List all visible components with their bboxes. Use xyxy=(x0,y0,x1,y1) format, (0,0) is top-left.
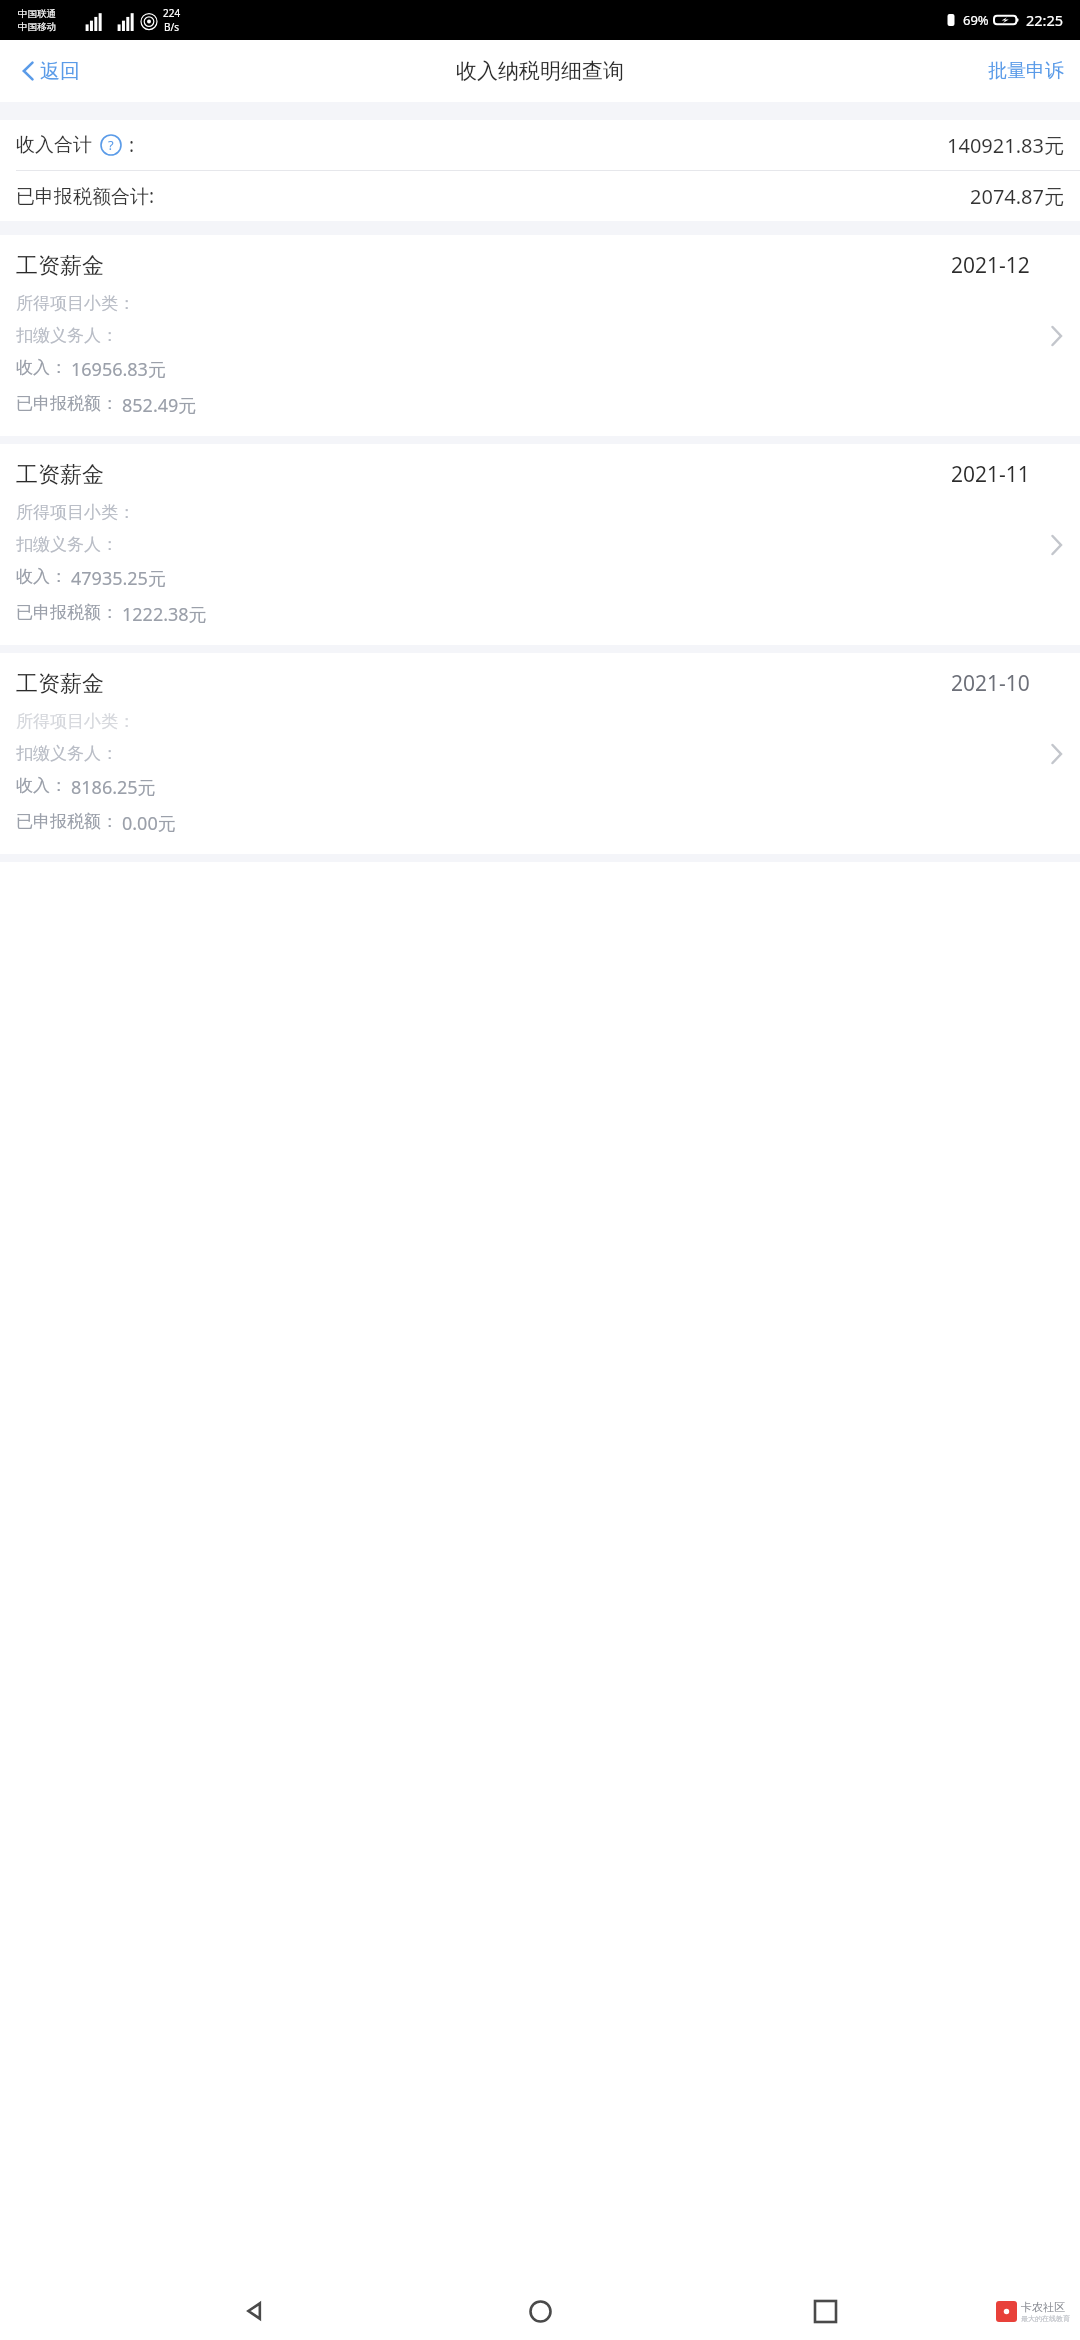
staticText: 16956.83元 xyxy=(71,357,166,382)
staticText: 批量申诉 xyxy=(988,59,1064,83)
staticText: 收入： xyxy=(16,775,67,796)
staticText: 224 xyxy=(163,6,181,20)
staticText: 返回 xyxy=(40,59,80,84)
staticText: 所得项目小类： xyxy=(16,711,135,732)
staticText: 所得项目小类： xyxy=(16,293,135,314)
button[interactable]: 返回 xyxy=(225,2282,285,2340)
button[interactable]: 批量申诉 xyxy=(972,49,1080,93)
button[interactable]: 工资薪金 xyxy=(0,235,1080,436)
staticText: 0.00元 xyxy=(122,811,176,836)
button[interactable]: 主屏幕 xyxy=(510,2282,570,2340)
staticText: 2074.87元 xyxy=(970,183,1064,210)
staticText: 工资薪金 xyxy=(16,670,104,698)
button[interactable]: 工资薪金 xyxy=(0,653,1080,854)
staticText: 扣缴义务人： xyxy=(16,325,118,346)
staticText: 2021-10 xyxy=(951,669,1030,698)
staticText: 扣缴义务人： xyxy=(16,743,118,764)
staticText: 已申报税额： xyxy=(16,602,118,623)
staticText: 2021-11 xyxy=(951,460,1030,489)
staticText: 22:25 xyxy=(1026,10,1064,30)
button[interactable]: 帮助 xyxy=(100,134,122,156)
staticText: 卡农社区 xyxy=(1021,2300,1065,2314)
staticText: 47935.25元 xyxy=(71,566,166,591)
button[interactable]: 最近任务 xyxy=(795,2282,855,2340)
staticText: 已申报税额合计: xyxy=(16,183,155,209)
staticText: : xyxy=(129,132,135,158)
staticText: 已申报税额： xyxy=(16,811,118,832)
staticText: 2021-12 xyxy=(951,251,1030,280)
staticText: 已申报税额： xyxy=(16,393,118,414)
staticText: B/s xyxy=(164,20,180,34)
staticText: 所得项目小类： xyxy=(16,502,135,523)
button[interactable]: 工资薪金 xyxy=(0,444,1080,645)
staticText: 收入合计 xyxy=(16,133,92,157)
staticText: 1222.38元 xyxy=(122,602,207,627)
staticText: 扣缴义务人： xyxy=(16,534,118,555)
staticText: 中国联通 xyxy=(18,8,56,20)
staticText: 最大的在线教育 xyxy=(1021,2314,1070,2323)
staticText: 140921.83元 xyxy=(947,132,1064,159)
staticText: 69% xyxy=(963,11,989,29)
staticText: 收入： xyxy=(16,566,67,587)
staticText: 852.49元 xyxy=(122,393,197,418)
staticText: 8186.25元 xyxy=(71,775,156,800)
staticText: 收入： xyxy=(16,357,67,378)
button[interactable]: 返回 xyxy=(0,50,92,92)
staticText: ? xyxy=(108,136,114,154)
staticText: 工资薪金 xyxy=(16,252,104,280)
staticText: 收入纳税明细查询 xyxy=(456,58,624,84)
staticText: 工资薪金 xyxy=(16,461,104,489)
staticText: 中国移动 xyxy=(18,21,56,33)
